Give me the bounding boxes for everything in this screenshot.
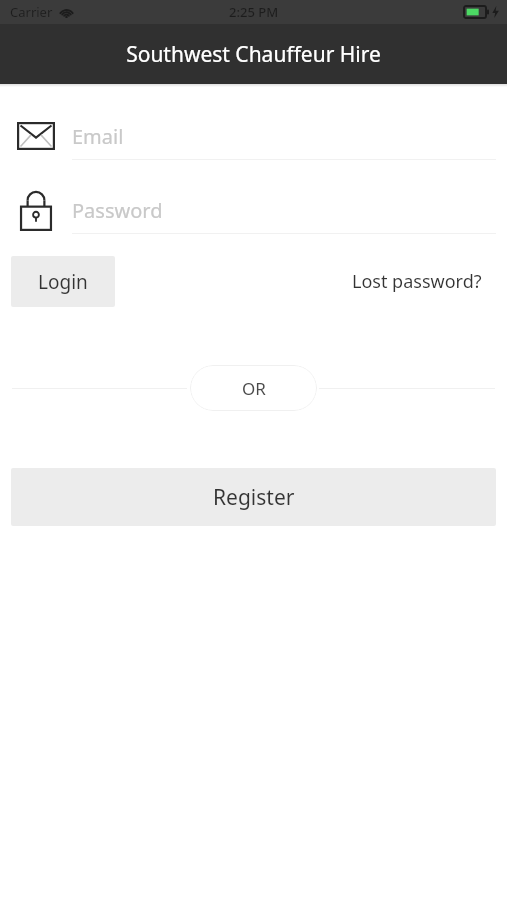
staticText: Register (213, 483, 295, 512)
staticText: Login (38, 269, 88, 295)
staticText: OR (242, 377, 266, 400)
staticText: Carrier (10, 3, 53, 21)
staticText: Lost password? (352, 269, 482, 294)
button[interactable]: Lost password? (338, 259, 496, 304)
button[interactable]: Login (11, 256, 115, 307)
other: Password (0, 189, 72, 231)
button[interactable]: Register (11, 468, 496, 526)
staticText: Southwest Chauffeur Hire (126, 40, 381, 69)
button[interactable]: Password (0, 187, 507, 233)
staticText: Password (72, 197, 163, 224)
staticText: 2:25 PM (229, 3, 279, 21)
button[interactable]: Email (0, 113, 507, 159)
other: Email (0, 122, 72, 150)
button[interactable]: OR (190, 365, 317, 411)
staticText: Email (72, 123, 124, 150)
